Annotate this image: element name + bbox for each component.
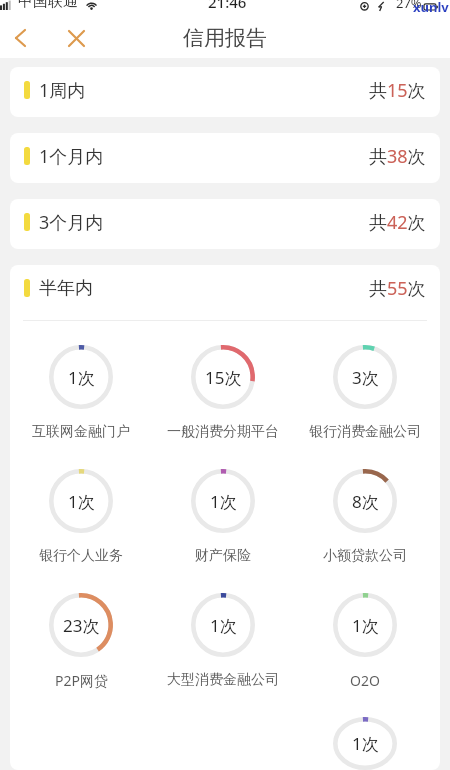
staticText: 21:46 xyxy=(208,0,247,10)
staticText: 1次 xyxy=(352,614,379,637)
button[interactable]: Back xyxy=(0,18,40,58)
staticText: 1次 xyxy=(210,490,237,513)
button[interactable]: 1周内 xyxy=(10,67,440,117)
staticText: 共55次 xyxy=(369,276,426,301)
staticText: 互联网金融门户 xyxy=(32,423,130,441)
button[interactable]: 1个月内 xyxy=(10,133,440,183)
staticText: 银行个人业务 xyxy=(39,547,123,565)
staticText: P2P网贷 xyxy=(55,671,108,690)
staticText: 共38次 xyxy=(369,144,426,169)
staticText: 1个月内 xyxy=(39,144,104,169)
staticText: 1周内 xyxy=(39,78,86,103)
staticText: 共42次 xyxy=(369,210,426,235)
staticText: 银行消费金融公司 xyxy=(309,423,421,441)
staticText: 财产保险 xyxy=(195,547,251,565)
staticText: 中国联通 xyxy=(18,0,78,10)
staticText: 信用报告 xyxy=(183,25,267,51)
staticText: 1次 xyxy=(68,490,95,513)
staticText: 27% xyxy=(396,0,422,12)
staticText: 3个月内 xyxy=(39,210,104,235)
staticText: xunlv xyxy=(413,0,449,16)
button[interactable]: 3个月内 xyxy=(10,199,440,249)
staticText: 共15次 xyxy=(369,78,426,103)
staticText: 半年内 xyxy=(39,277,93,300)
staticText: 15次 xyxy=(205,366,242,389)
staticText: 1次 xyxy=(210,614,237,637)
staticText: O2O xyxy=(350,671,380,690)
staticText: 大型消费金融公司 xyxy=(167,671,279,689)
staticText: 1次 xyxy=(352,732,379,755)
staticText: 8次 xyxy=(352,490,379,513)
button[interactable]: Close xyxy=(56,18,96,58)
staticText: 小额贷款公司 xyxy=(323,547,407,565)
staticText: 23次 xyxy=(63,614,100,637)
staticText: 一般消费分期平台 xyxy=(167,423,279,441)
staticText: 1次 xyxy=(68,366,95,389)
staticText: 3次 xyxy=(352,366,379,389)
